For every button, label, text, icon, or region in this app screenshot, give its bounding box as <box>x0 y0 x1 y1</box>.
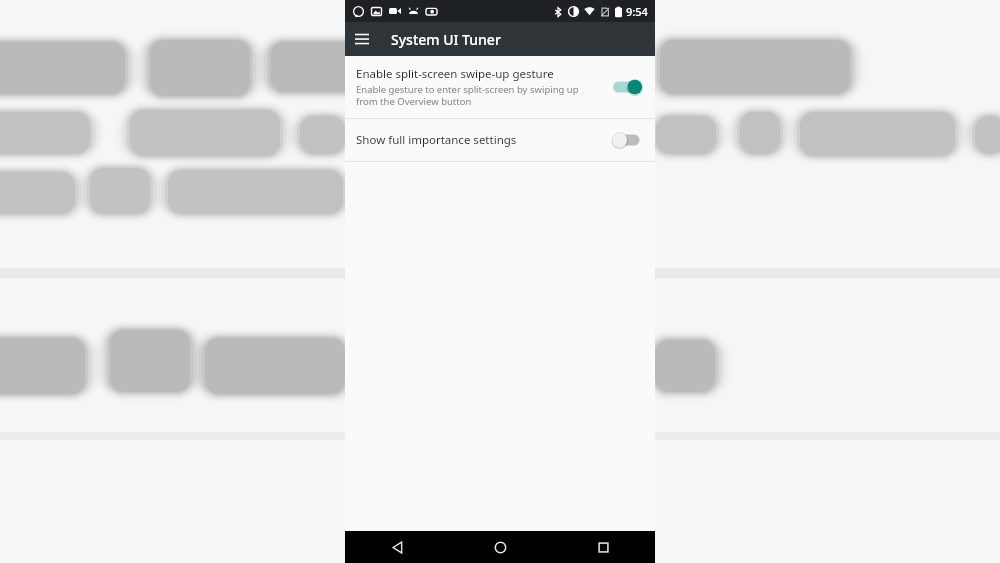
staticText: Enable split-screen swipe-up gesture <box>356 66 554 82</box>
staticText: 9:54 <box>626 4 648 19</box>
button[interactable]: Open navigation drawer <box>345 22 379 56</box>
button[interactable]: Home <box>449 531 552 563</box>
staticText: Show full importance settings <box>356 132 517 148</box>
button[interactable]: On <box>611 76 645 98</box>
button[interactable]: Enable split-screen swipe-up gesture <box>345 56 655 118</box>
staticText: Enable gesture to enter split-screen by … <box>356 83 579 108</box>
button[interactable]: Overview <box>552 531 655 563</box>
button[interactable]: Back <box>345 531 449 563</box>
button[interactable]: Show full importance settings <box>345 119 655 161</box>
button[interactable]: Off <box>611 129 645 151</box>
staticText: System UI Tuner <box>391 30 501 49</box>
